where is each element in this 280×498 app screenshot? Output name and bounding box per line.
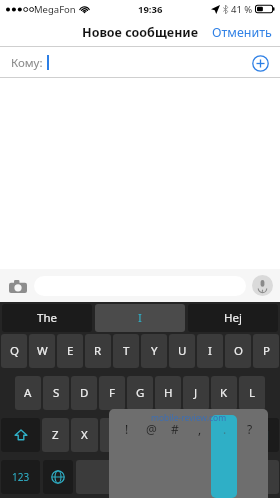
button[interactable]: D [71,376,97,410]
button[interactable]: O [225,334,251,368]
button[interactable]: L [239,376,265,410]
staticText: O [234,343,243,359]
button[interactable]: N [185,418,211,452]
staticText: T [123,343,130,359]
staticText: , [198,421,202,437]
button[interactable] [224,460,279,494]
button[interactable]: U [169,334,195,368]
button[interactable]: A [15,376,41,410]
button[interactable]: Q [1,334,27,368]
staticText: P [263,343,270,359]
button[interactable] [76,460,221,494]
button[interactable]: 123 [1,460,40,494]
button[interactable]: C [100,418,127,452]
button[interactable]: R [85,334,111,368]
staticText: I [208,343,212,359]
button[interactable]: Backspace [241,418,279,452]
button[interactable]: V [129,418,155,452]
button[interactable]: F [99,376,125,410]
staticText: K [220,385,228,401]
staticText: mobile-review.com [151,412,227,424]
button[interactable]: ! [109,409,268,498]
staticText: @ [146,421,157,437]
staticText: Z [52,427,59,443]
button[interactable]: E [57,334,83,368]
staticText: Hej [224,310,242,326]
button[interactable]: X [71,418,98,452]
button[interactable]: Shift [1,418,40,452]
staticText: M [221,427,232,443]
staticText: MegaFon [34,3,76,16]
staticText: ! [125,421,129,437]
staticText: X [81,427,88,443]
staticText: Y [151,343,158,359]
button[interactable]: K [211,376,237,410]
staticText: D [80,385,89,401]
button[interactable]: Add contact [250,53,270,73]
staticText: U [178,343,187,359]
button[interactable]: P [253,334,279,368]
staticText: . [223,421,227,437]
staticText: F [109,385,115,401]
staticText: B [166,427,174,443]
button[interactable]: B [157,418,183,452]
button[interactable]: I [197,334,223,368]
button[interactable]: I [95,304,185,332]
staticText: I [138,310,142,326]
button[interactable]: Отменить [204,20,280,45]
staticText: L [249,385,256,401]
staticText: 19:36 [138,3,163,16]
button[interactable]: Y [141,334,167,368]
staticText: J [194,385,198,401]
staticText: The [37,310,57,326]
staticText: W [37,343,48,359]
staticText: R [94,343,102,359]
staticText: G [136,385,145,401]
button[interactable]: J [183,376,209,410]
staticText: E [67,343,74,359]
button[interactable]: G [127,376,153,410]
button[interactable]: Hej [188,304,278,332]
button[interactable]: Change keyboard [43,460,73,494]
button[interactable]: Camera [7,275,29,297]
button[interactable]: W [29,334,55,368]
staticText: 123 [12,470,30,484]
staticText: N [194,427,203,443]
button[interactable]: H [155,376,181,410]
button[interactable]: T [113,334,139,368]
staticText: # [171,421,179,437]
button[interactable]: M [213,418,239,452]
staticText: ? [247,421,253,437]
staticText: S [53,385,60,401]
button[interactable]: Z [42,418,69,452]
staticText: Кому: [11,55,43,71]
button[interactable]: The [2,304,92,332]
staticText: H [164,385,173,401]
button[interactable]: S [43,376,69,410]
staticText: Новое сообщение [82,24,199,41]
staticText: Отменить [212,24,272,41]
staticText: 41 % [231,3,253,16]
staticText: A [24,385,32,401]
button[interactable]: Voice message [252,275,273,296]
staticText: Q [10,343,19,359]
